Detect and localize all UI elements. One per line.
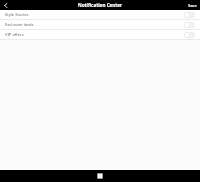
button[interactable]: Toggle xyxy=(184,12,195,18)
button[interactable]: Toggle xyxy=(184,22,195,28)
button[interactable]: Save xyxy=(188,0,197,10)
staticText: VIP offers xyxy=(5,32,24,38)
staticText: Style Stories xyxy=(5,12,29,18)
staticText: Exclusive deals xyxy=(5,22,34,28)
button[interactable]: VIP offers xyxy=(0,30,200,39)
button[interactable]: Back xyxy=(0,0,12,10)
button[interactable]: Home xyxy=(95,171,105,181)
staticText: Notification Center xyxy=(78,2,123,8)
staticText: Save xyxy=(188,3,197,8)
button[interactable]: Style Stories xyxy=(0,10,200,19)
button[interactable]: Exclusive deals xyxy=(0,20,200,29)
button[interactable]: Toggle xyxy=(184,32,195,38)
